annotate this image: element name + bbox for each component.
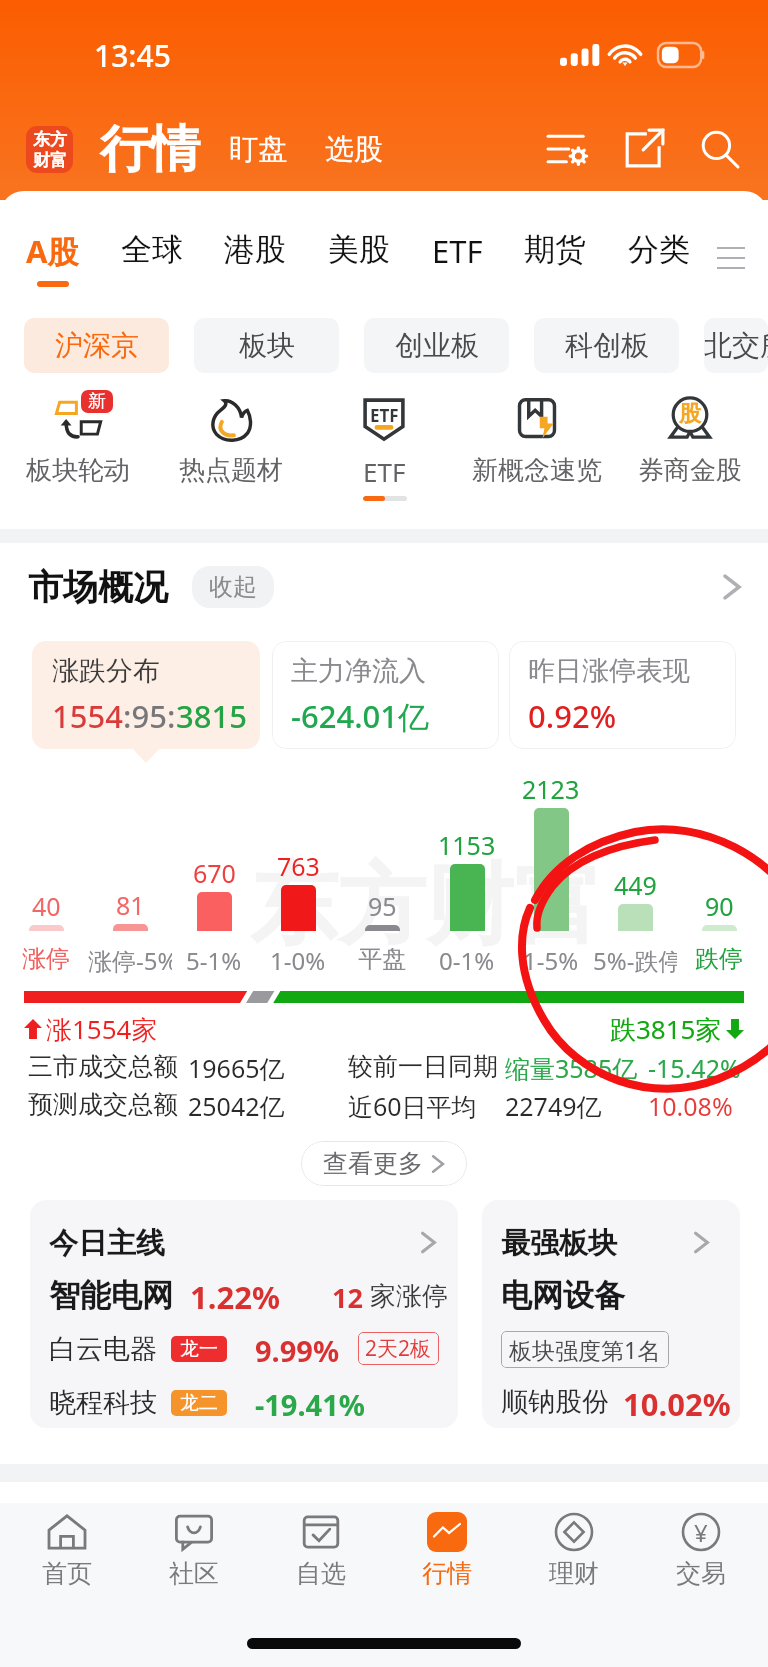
staticText: 财富 bbox=[33, 150, 67, 171]
staticText: ETF bbox=[370, 404, 399, 427]
staticText: 股 bbox=[679, 400, 701, 428]
button[interactable]: 期货 bbox=[524, 230, 586, 284]
staticText: 跌3815家 bbox=[610, 1011, 722, 1047]
button[interactable]: 理财 bbox=[514, 1510, 634, 1589]
staticText: 涨停 bbox=[22, 944, 70, 974]
staticText: 行情 bbox=[100, 118, 200, 181]
staticText: 449 bbox=[614, 868, 657, 902]
button[interactable]: 新 bbox=[3, 392, 153, 487]
staticText: 三市成交总额 bbox=[28, 1051, 178, 1082]
button[interactable]: 股 bbox=[615, 392, 765, 487]
staticText: 新概念速览 bbox=[472, 454, 602, 487]
staticText: 家涨停 bbox=[370, 1280, 448, 1313]
staticText: 今日主线 bbox=[49, 1225, 165, 1262]
button[interactable]: 主力净流入 bbox=[272, 641, 499, 749]
staticText: 3815 bbox=[176, 695, 247, 737]
button[interactable]: A股 bbox=[26, 230, 79, 287]
button[interactable]: 美股 bbox=[328, 230, 390, 284]
staticText: 昨日涨停表现 bbox=[528, 654, 690, 688]
button[interactable]: 行情 bbox=[387, 1510, 507, 1589]
staticText: A股 bbox=[26, 230, 79, 272]
staticText: 港股 bbox=[224, 230, 286, 269]
staticText: 板块强度第1名 bbox=[509, 1334, 661, 1365]
staticText: 10.08% bbox=[648, 1089, 733, 1123]
staticText: ETF bbox=[432, 230, 483, 272]
button[interactable]: ¥ bbox=[641, 1510, 761, 1589]
staticText: 美股 bbox=[328, 230, 390, 269]
staticText: 40 bbox=[32, 889, 61, 923]
button[interactable]: 热点题材 bbox=[156, 392, 306, 487]
staticText: 白云电器 bbox=[49, 1332, 157, 1366]
staticText: 自选 bbox=[296, 1558, 346, 1589]
button[interactable]: 最强板块 bbox=[482, 1200, 740, 1428]
staticText: 22749亿 bbox=[505, 1089, 602, 1123]
staticText: 近60日平均 bbox=[348, 1089, 477, 1123]
staticText: 跌停 bbox=[695, 944, 743, 974]
staticText: 全球 bbox=[121, 230, 183, 269]
button[interactable]: 港股 bbox=[224, 230, 286, 284]
staticText: -19.41% bbox=[255, 1385, 365, 1424]
button[interactable]: 社区 bbox=[134, 1510, 254, 1589]
button[interactable]: 板块 bbox=[194, 318, 339, 373]
button[interactable]: ETF bbox=[432, 230, 483, 287]
staticText: -624.01亿 bbox=[291, 695, 430, 737]
staticText: 0-1% bbox=[439, 944, 495, 977]
button[interactable]: 首页 bbox=[7, 1510, 127, 1589]
staticText: 1554 bbox=[52, 695, 123, 737]
staticText: 东方 bbox=[33, 129, 67, 150]
button[interactable]: Share bbox=[616, 121, 672, 177]
staticText: 创业板 bbox=[395, 328, 479, 363]
button[interactable]: 分类 bbox=[628, 230, 690, 284]
staticText: 新 bbox=[88, 390, 106, 413]
staticText: 10.02% bbox=[623, 1383, 731, 1425]
staticText: 晓程科技 bbox=[49, 1386, 157, 1420]
staticText: 收起 bbox=[209, 572, 257, 602]
staticText: 预测成交总额 bbox=[28, 1089, 178, 1120]
staticText: 9.99% bbox=[255, 1331, 340, 1370]
button[interactable]: More tabs bbox=[708, 235, 754, 281]
button[interactable]: 科创板 bbox=[534, 318, 679, 373]
button[interactable]: Search bbox=[692, 121, 748, 177]
button[interactable]: 沪深京 bbox=[24, 318, 169, 373]
staticText: 25042亿 bbox=[188, 1089, 285, 1123]
staticText: 理财 bbox=[549, 1558, 599, 1589]
button[interactable]: 全球 bbox=[121, 230, 183, 284]
button[interactable]: 涨跌分布 bbox=[32, 641, 260, 749]
staticText: 90 bbox=[705, 889, 734, 923]
button[interactable]: 新概念速览 bbox=[462, 392, 612, 487]
button[interactable]: ETF bbox=[309, 392, 459, 489]
staticText: 0.92% bbox=[528, 695, 617, 737]
staticText: 电网设备 bbox=[501, 1276, 625, 1315]
staticText: 81 bbox=[116, 888, 145, 922]
staticText: 查看更多 bbox=[323, 1148, 423, 1179]
button[interactable]: 创业板 bbox=[364, 318, 509, 373]
button[interactable]: 自选 bbox=[261, 1510, 381, 1589]
staticText: 2天2板 bbox=[365, 1334, 432, 1363]
staticText: 分类 bbox=[628, 230, 690, 269]
staticText: 1-5% bbox=[523, 944, 579, 977]
button[interactable]: 查看更多 bbox=[301, 1141, 467, 1186]
staticText: 板块轮动 bbox=[26, 454, 130, 487]
staticText: ¥ bbox=[694, 1516, 708, 1549]
button[interactable]: 今日主线 bbox=[30, 1200, 458, 1428]
button[interactable]: Filter settings bbox=[540, 121, 596, 177]
button[interactable]: 市场概况 bbox=[28, 565, 742, 609]
staticText: -15.42% bbox=[648, 1051, 741, 1085]
button[interactable]: 北交所 bbox=[704, 318, 768, 373]
staticText: 涨停-5% bbox=[88, 944, 172, 977]
staticText: 盯盘 bbox=[229, 131, 287, 168]
staticText: 5-1% bbox=[186, 944, 242, 977]
staticText: 龙二 bbox=[180, 1391, 218, 1415]
staticText: 670 bbox=[193, 856, 236, 890]
staticText: 涨跌分布 bbox=[52, 654, 160, 688]
staticText: 1-0% bbox=[270, 944, 326, 977]
staticText: 社区 bbox=[169, 1558, 219, 1589]
button[interactable]: 昨日涨停表现 bbox=[509, 641, 736, 749]
staticText: 95 bbox=[368, 889, 397, 923]
staticText: 行情 bbox=[422, 1558, 472, 1589]
staticText: 最强板块 bbox=[501, 1225, 617, 1262]
staticText: 龙一 bbox=[180, 1337, 218, 1361]
staticText: 12 bbox=[332, 1279, 363, 1316]
staticText: 平盘 bbox=[358, 944, 406, 974]
staticText: 北交所 bbox=[704, 328, 768, 363]
